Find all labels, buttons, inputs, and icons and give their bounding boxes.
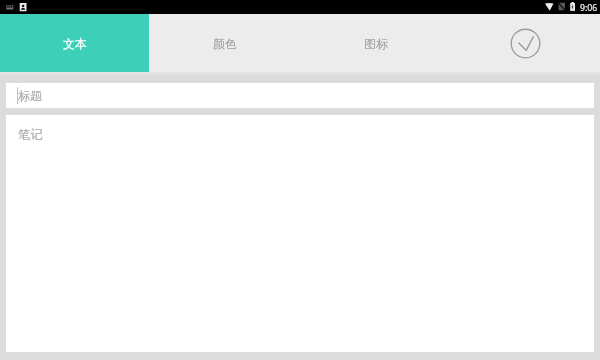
staticText: 9:06 (580, 2, 598, 14)
staticText: 笔记 (18, 127, 43, 143)
staticText: 文本 (63, 36, 87, 51)
button[interactable]: 文本 (0, 14, 149, 72)
staticText: 颜色 (213, 36, 237, 51)
button[interactable]: 图标 (300, 14, 451, 72)
staticText: 图标 (364, 36, 388, 51)
staticText: 标题 (18, 88, 42, 103)
button[interactable]: 颜色 (149, 14, 300, 72)
button[interactable]: Done (510, 28, 541, 59)
button[interactable]: 标题 (6, 83, 594, 108)
